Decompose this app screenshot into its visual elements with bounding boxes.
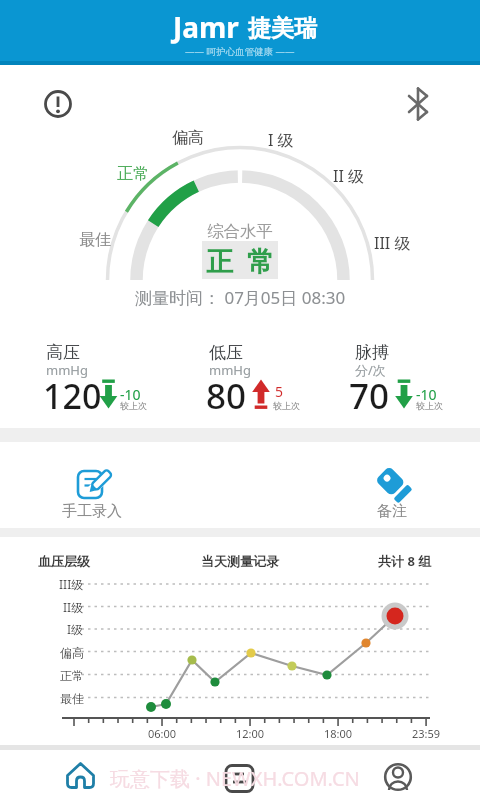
staticText: 5 — [275, 382, 284, 401]
staticText: 玩意下载 · NEWXH.COM.CN — [110, 765, 360, 792]
staticText: 血压层级 — [38, 553, 90, 569]
staticText: II级 — [63, 599, 84, 615]
staticText: 最佳 — [60, 691, 84, 706]
button[interactable] — [340, 752, 460, 800]
staticText: I 级 — [268, 129, 294, 151]
staticText: 较上次 — [416, 400, 443, 411]
staticText: 偏高 — [172, 128, 204, 148]
button[interactable] — [180, 752, 300, 800]
staticText: 正 常 — [206, 242, 275, 279]
button[interactable] — [402, 85, 436, 123]
staticText: 较上次 — [273, 400, 300, 411]
staticText: 70 — [349, 372, 390, 420]
button[interactable] — [357, 458, 427, 524]
staticText: 低压 — [209, 342, 243, 363]
staticText: 备注 — [377, 502, 407, 521]
button[interactable] — [55, 458, 130, 524]
staticText: 脉搏 — [355, 342, 389, 363]
button[interactable] — [20, 752, 160, 800]
staticText: mmHg — [46, 361, 88, 379]
staticText: 分/次 — [355, 361, 386, 379]
staticText: 手工录入 — [62, 502, 122, 521]
staticText: -10 — [416, 385, 437, 404]
staticText: mmHg — [209, 361, 251, 379]
staticText: 06:00 — [148, 726, 177, 741]
staticText: 当天测量记录 — [201, 553, 279, 569]
staticText: 共计 8 组 — [378, 552, 432, 570]
staticText: 捷美瑞 — [248, 14, 317, 43]
staticText: II 级 — [333, 165, 365, 187]
staticText: I级 — [67, 621, 84, 637]
staticText: 120 — [43, 373, 102, 419]
staticText: 综合水平 — [207, 221, 273, 242]
staticText: 偏高 — [60, 645, 84, 660]
staticText: 最佳 — [79, 230, 111, 250]
staticText: 测量时间： 07月05日 08:30 — [135, 286, 346, 309]
staticText: 23:59 — [412, 726, 441, 741]
staticText: 正常 — [60, 668, 84, 683]
staticText: -10 — [120, 385, 141, 404]
staticText: III 级 — [374, 232, 411, 254]
staticText: 18:00 — [324, 726, 353, 741]
staticText: 80 — [206, 372, 247, 420]
staticText: III级 — [59, 576, 84, 592]
button[interactable] — [40, 85, 78, 123]
staticText: 12:00 — [236, 726, 265, 741]
staticText: 正常 — [117, 164, 149, 184]
staticText: 高压 — [46, 342, 80, 363]
staticText: Jamr — [173, 8, 239, 46]
staticText: —— 呵护心血管健康 —— — [185, 45, 295, 58]
staticText: 较上次 — [120, 400, 147, 411]
